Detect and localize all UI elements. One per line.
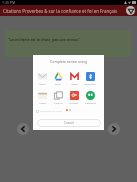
button[interactable]: Previous quote <box>17 123 29 135</box>
staticText: 1:35 PM <box>2 0 16 5</box>
staticText: "La tricherie est le choix, pas une erre… <box>8 37 81 42</box>
button[interactable]: Copy to <box>50 91 66 104</box>
staticText: Copy to <box>54 101 63 104</box>
button[interactable]: Cancel <box>37 119 101 127</box>
staticText: Google+ <box>69 101 79 104</box>
staticText: Bluetooth <box>84 82 96 85</box>
staticText: Hangouts <box>85 101 96 104</box>
staticText: Complete action using <box>33 59 104 64</box>
button[interactable]: Google+ <box>66 91 82 104</box>
button[interactable]: Remember my choice <box>36 110 63 113</box>
button[interactable]: Gmail <box>66 72 82 85</box>
button[interactable]: Hangouts <box>82 91 98 104</box>
staticText: Email <box>39 82 46 85</box>
button[interactable]: Notes <box>34 91 50 104</box>
button[interactable]: Email <box>34 72 50 85</box>
staticText: Cancel <box>64 121 74 125</box>
button[interactable]: Drive <box>50 72 66 85</box>
button[interactable]: Next quote <box>108 123 120 135</box>
button[interactable]: App badge <box>126 6 135 15</box>
staticText: Drive <box>55 82 61 85</box>
staticText: Gmail <box>71 82 78 85</box>
button[interactable]: "La tricherie est le choix, pas une erre… <box>5 30 131 57</box>
staticText: Remember my choice <box>40 110 63 113</box>
button[interactable]: Bluetooth <box>82 72 98 85</box>
staticText: Notes <box>39 101 46 104</box>
staticText: Citations Proverbes & sur la confiance e… <box>3 8 124 14</box>
